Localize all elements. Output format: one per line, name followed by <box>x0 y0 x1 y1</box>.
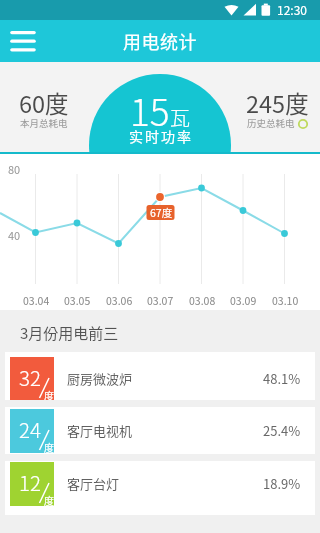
staticText: 15 <box>130 83 170 137</box>
staticText: 用电统计 <box>123 28 197 54</box>
staticText: 25.4% <box>263 421 301 440</box>
staticText: 18.9% <box>263 474 301 493</box>
staticText: 度 <box>44 493 54 507</box>
staticText: 60度 <box>19 86 69 120</box>
staticText: 245度 <box>246 86 309 120</box>
staticText: 实时功率 <box>129 126 193 146</box>
staticText: 瓦 <box>170 103 190 132</box>
staticText: 本月总耗电 <box>20 116 68 130</box>
staticText: 客厅电视机 <box>67 421 133 440</box>
staticText: 03.04 <box>23 293 50 308</box>
staticText: 24 <box>19 414 41 444</box>
button[interactable]: 12 <box>5 461 315 515</box>
staticText: 历史总耗电 <box>247 116 295 130</box>
staticText: 80 <box>8 161 21 177</box>
button[interactable]: 32 <box>5 352 315 400</box>
staticText: 度 <box>44 388 54 402</box>
staticText: 03.08 <box>189 293 216 308</box>
staticText: 3月份用电前三 <box>20 322 119 344</box>
staticText: 厨房微波炉 <box>67 369 133 388</box>
staticText: 度 <box>44 440 54 454</box>
staticText: 12:30 <box>277 1 307 18</box>
staticText: 03.05 <box>64 293 91 308</box>
staticText: 67度 <box>150 205 173 220</box>
button[interactable]: 67度 <box>147 205 175 220</box>
button[interactable]: 24 <box>5 407 315 454</box>
staticText: 客厅台灯 <box>67 474 120 493</box>
staticText: 32 <box>19 362 41 392</box>
staticText: 03.06 <box>106 293 133 308</box>
staticText: 03.09 <box>230 293 257 308</box>
staticText: 48.1% <box>263 369 301 388</box>
staticText: 03.10 <box>272 293 299 308</box>
staticText: 12 <box>19 467 41 497</box>
button[interactable] <box>6 25 40 57</box>
staticText: 03.07 <box>147 293 174 308</box>
staticText: 40 <box>8 227 21 243</box>
